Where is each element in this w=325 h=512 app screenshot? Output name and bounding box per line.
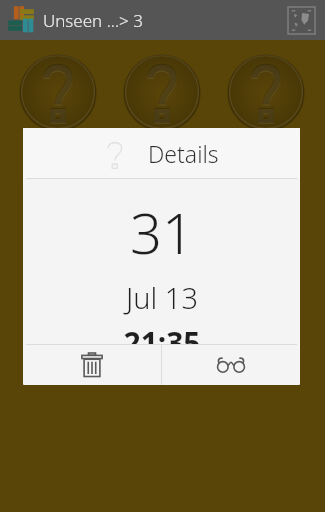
button[interactable]: App icon — [7, 5, 37, 35]
button[interactable]: World map — [288, 7, 315, 34]
button[interactable]: Mark as seen — [162, 345, 300, 385]
staticText: Jul 13 — [126, 278, 198, 317]
staticText: Details — [148, 138, 219, 169]
button[interactable]: Delete — [23, 345, 161, 385]
staticText: Unseen ...> 3 — [43, 9, 143, 32]
staticText: 31 — [130, 194, 194, 270]
staticText: 21:35 — [123, 322, 201, 344]
